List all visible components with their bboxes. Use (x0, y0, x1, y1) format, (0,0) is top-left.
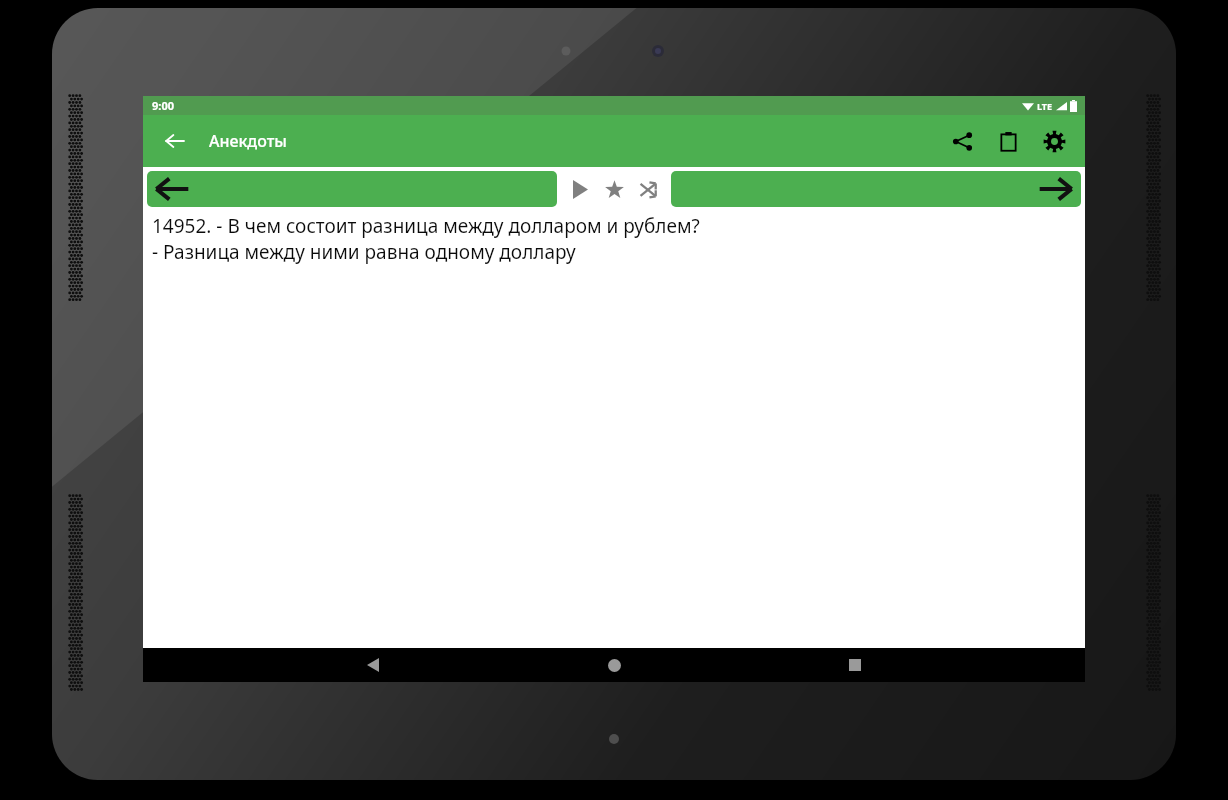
button[interactable]: Next (671, 171, 1081, 207)
button[interactable]: Home (590, 648, 638, 682)
staticText: - Разница между ними равна одному доллар… (152, 239, 576, 265)
staticText: 9:00 (152, 98, 174, 113)
button[interactable]: Play (563, 171, 597, 207)
button[interactable]: Back (155, 121, 195, 161)
button[interactable]: Previous (147, 171, 557, 207)
button[interactable]: Back (349, 648, 397, 682)
staticText: Анекдоты (209, 130, 287, 152)
button[interactable]: Favorite (597, 171, 631, 207)
button[interactable]: Recent apps (831, 648, 879, 682)
button[interactable]: Clipboard (985, 118, 1031, 164)
staticText: 14952. - В чем состоит разница между дол… (152, 213, 700, 239)
button[interactable]: Settings (1031, 118, 1077, 164)
button[interactable]: Shuffle (631, 171, 665, 207)
button[interactable]: Share (939, 118, 985, 164)
staticText: LTE (1037, 100, 1053, 112)
